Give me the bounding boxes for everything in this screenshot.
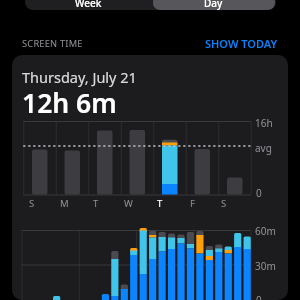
staticText: T	[93, 197, 99, 209]
staticText: 0	[256, 186, 262, 200]
staticText: 16h	[255, 116, 273, 130]
button[interactable]: Day	[173, 0, 253, 11]
staticText: 30m	[255, 259, 276, 273]
staticText: F	[190, 197, 195, 209]
staticText: W	[124, 197, 133, 209]
button[interactable]	[12, 55, 288, 300]
staticText: S	[29, 197, 35, 209]
staticText: SCREEN TIME	[22, 37, 83, 50]
staticText: 60m	[255, 224, 276, 238]
staticText: Week	[75, 0, 102, 10]
staticText: Day	[204, 0, 223, 10]
button[interactable]	[153, 0, 275, 10]
staticText: T	[157, 197, 163, 209]
staticText: Thursday, July 21	[22, 67, 137, 87]
staticText: 0	[256, 293, 262, 300]
button[interactable]: Week	[48, 0, 128, 11]
staticText: SHOW TODAY	[205, 36, 278, 50]
button[interactable]: SHOW TODAY	[195, 36, 278, 50]
staticText: 12h 6m	[22, 85, 117, 121]
staticText: S	[221, 197, 227, 209]
staticText: avg	[255, 141, 272, 155]
staticText: M	[60, 197, 69, 209]
